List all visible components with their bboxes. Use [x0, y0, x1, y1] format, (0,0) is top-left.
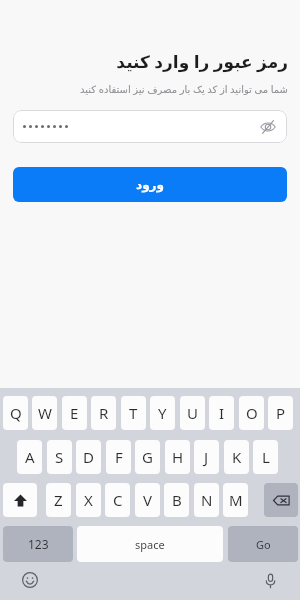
staticText: Z: [54, 490, 63, 510]
button[interactable]: T: [121, 396, 146, 430]
staticText: B: [172, 490, 182, 510]
staticText: R: [99, 403, 109, 423]
button[interactable]: L: [253, 440, 278, 474]
button[interactable]: Y: [150, 396, 175, 430]
staticText: space: [135, 537, 165, 552]
staticText: J: [204, 447, 209, 467]
button[interactable]: J: [194, 440, 219, 474]
staticText: V: [143, 490, 153, 510]
button[interactable]: H: [165, 440, 190, 474]
button[interactable]: space: [77, 526, 223, 562]
staticText: N: [201, 490, 213, 510]
staticText: L: [262, 447, 270, 467]
staticText: D: [83, 447, 94, 467]
staticText: U: [187, 403, 198, 423]
button[interactable]: Show password: [258, 117, 278, 137]
button[interactable]: V: [135, 483, 160, 517]
staticText: ورود: [136, 178, 164, 192]
button[interactable]: Z: [46, 483, 71, 517]
staticText: O: [246, 403, 258, 423]
button[interactable]: I: [209, 396, 234, 430]
staticText: شما می توانید از کد یک بار مصرف نیز استف…: [0, 82, 288, 96]
button[interactable]: ورود: [13, 167, 287, 202]
button[interactable]: F: [106, 440, 131, 474]
staticText: P: [276, 403, 286, 423]
button[interactable]: N: [194, 483, 219, 517]
button[interactable]: G: [135, 440, 160, 474]
button[interactable]: U: [180, 396, 205, 430]
button[interactable]: E: [62, 396, 87, 430]
staticText: I: [219, 403, 225, 423]
staticText: M: [229, 490, 243, 510]
button[interactable]: K: [224, 440, 249, 474]
button[interactable]: Show password: [13, 110, 287, 143]
staticText: 123: [28, 536, 49, 552]
button[interactable]: M: [223, 483, 248, 517]
staticText: C: [113, 490, 123, 510]
staticText: W: [38, 403, 52, 423]
staticText: A: [25, 447, 35, 467]
button[interactable]: D: [76, 440, 101, 474]
button[interactable]: W: [32, 396, 57, 430]
staticText: T: [129, 403, 138, 423]
staticText: F: [115, 447, 123, 467]
button[interactable]: C: [105, 483, 130, 517]
button[interactable]: Shift: [3, 483, 37, 517]
button[interactable]: 123: [3, 526, 73, 562]
staticText: Y: [158, 403, 167, 423]
button[interactable]: S: [47, 440, 72, 474]
button[interactable]: Voice input: [259, 569, 281, 591]
staticText: رمز عبور را وارد کنید: [0, 50, 288, 73]
staticText: Q: [10, 403, 22, 423]
button[interactable]: Backspace: [264, 483, 298, 517]
button[interactable]: O: [239, 396, 264, 430]
button[interactable]: X: [76, 483, 101, 517]
staticText: S: [55, 447, 64, 467]
button[interactable]: Emoji: [19, 569, 41, 591]
staticText: E: [70, 403, 79, 423]
button[interactable]: Go: [228, 526, 298, 562]
staticText: Go: [256, 537, 271, 552]
button[interactable]: A: [17, 440, 42, 474]
button[interactable]: B: [164, 483, 189, 517]
staticText: K: [232, 447, 242, 467]
staticText: H: [172, 447, 184, 467]
button[interactable]: P: [268, 396, 293, 430]
staticText: X: [84, 490, 93, 510]
button[interactable]: Q: [3, 396, 28, 430]
button[interactable]: R: [91, 396, 116, 430]
staticText: G: [142, 447, 153, 467]
